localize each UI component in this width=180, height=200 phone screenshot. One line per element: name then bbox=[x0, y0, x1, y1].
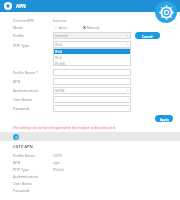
staticText: Manual bbox=[87, 25, 100, 30]
button[interactable]: Manual bbox=[83, 25, 102, 30]
staticText: APN bbox=[13, 160, 53, 165]
staticText: cgtv bbox=[53, 160, 60, 165]
staticText: PDP Type bbox=[13, 167, 53, 172]
staticText: Apply bbox=[160, 117, 169, 121]
staticText: NONE bbox=[55, 88, 126, 93]
staticText: Mode bbox=[13, 25, 53, 30]
staticText: Password bbox=[13, 106, 53, 111]
staticText: IPv4v6 bbox=[55, 61, 66, 65]
staticText: Current APN bbox=[13, 18, 53, 23]
staticText: Password bbox=[13, 188, 53, 193]
staticText: Auto bbox=[59, 25, 67, 30]
button[interactable] bbox=[53, 105, 131, 112]
staticText: Profile Name * bbox=[13, 70, 53, 75]
staticText: CGTV bbox=[53, 153, 62, 158]
staticText: Internet bbox=[55, 33, 126, 38]
staticText: User Name bbox=[13, 97, 53, 102]
staticText: IPv6 bbox=[55, 55, 62, 59]
button[interactable] bbox=[53, 69, 131, 76]
button[interactable] bbox=[53, 78, 131, 85]
staticText: Cancel bbox=[142, 34, 153, 38]
button[interactable]: IPv4 bbox=[53, 48, 131, 54]
button[interactable]: Cancel bbox=[135, 32, 160, 39]
button[interactable]: Back bbox=[4, 2, 12, 10]
staticText: The setting can not be changed when the … bbox=[13, 125, 116, 129]
staticText: Authentication bbox=[13, 174, 53, 179]
staticText: IPv4 bbox=[55, 49, 62, 53]
staticText: Authentication bbox=[13, 88, 53, 93]
staticText: IPv4 bbox=[55, 42, 126, 47]
button[interactable]: IPv6 bbox=[53, 54, 131, 60]
staticText: APN bbox=[16, 3, 26, 9]
button[interactable]: IPv4v6 bbox=[53, 60, 131, 66]
button[interactable]: Settings bbox=[155, 1, 177, 23]
button[interactable]: Apply bbox=[155, 115, 173, 122]
button[interactable] bbox=[53, 96, 131, 103]
staticText: Profile Name bbox=[13, 153, 53, 158]
button[interactable]: NONE bbox=[53, 87, 131, 94]
staticText: User Name bbox=[13, 181, 53, 186]
staticText: CGTV APN bbox=[13, 144, 33, 149]
button[interactable]: Internet bbox=[53, 32, 131, 39]
button[interactable]: Auto bbox=[55, 25, 69, 30]
button[interactable]: IPv4 bbox=[53, 41, 131, 48]
button[interactable]: Info bbox=[13, 134, 19, 140]
staticText: PDP Type bbox=[13, 43, 53, 48]
staticText: Internet bbox=[53, 18, 67, 23]
staticText: Profile bbox=[13, 33, 53, 38]
staticText: APN bbox=[13, 79, 53, 84]
staticText: IPv4v6 bbox=[53, 167, 64, 172]
